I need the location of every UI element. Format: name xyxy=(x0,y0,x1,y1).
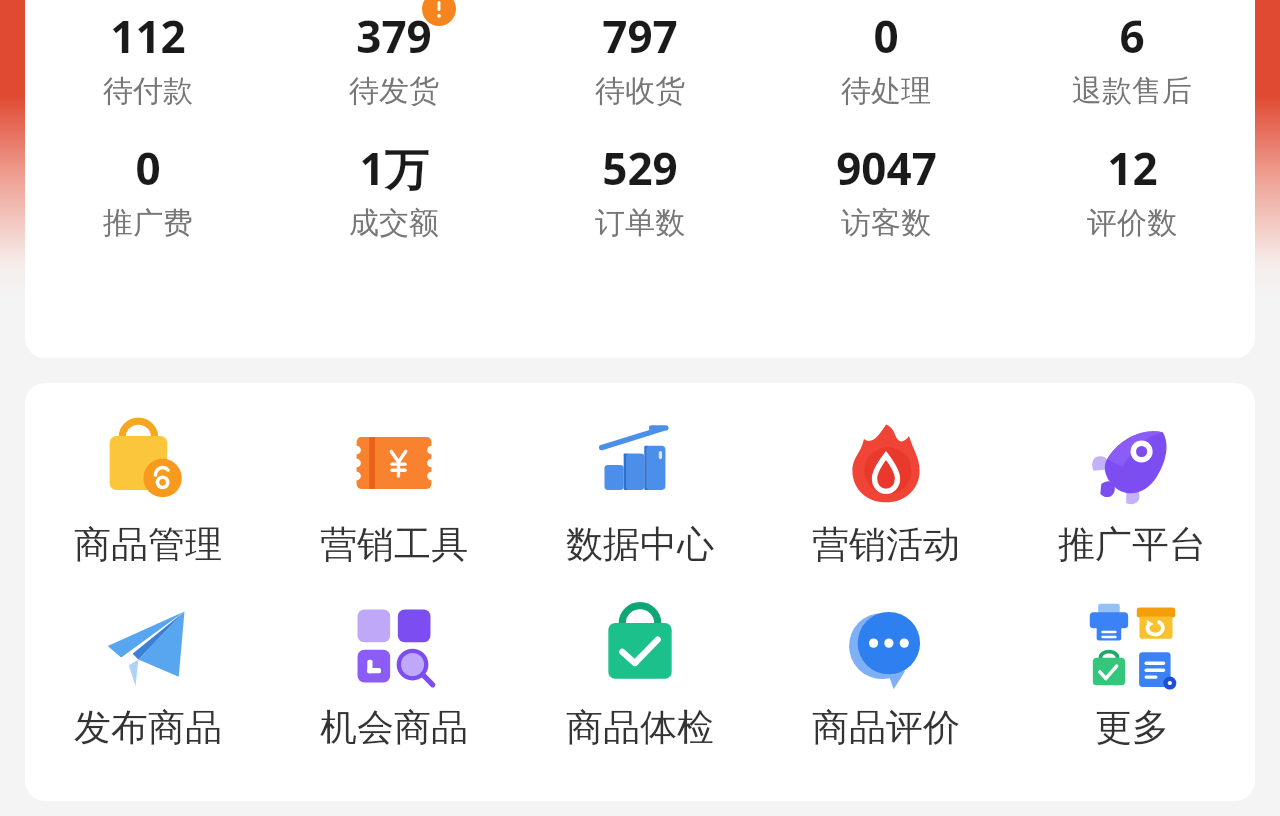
button[interactable]: 379 xyxy=(271,6,517,110)
staticText: 待处理 xyxy=(841,72,931,110)
staticText: 797 xyxy=(602,6,678,66)
button[interactable]: 营销工具 xyxy=(271,415,517,568)
staticText: 推广费 xyxy=(103,204,193,242)
staticText: 529 xyxy=(602,138,678,198)
staticText: 退款售后 xyxy=(1072,72,1192,110)
staticText: 成交额 xyxy=(349,204,439,242)
staticText: 订单数 xyxy=(595,204,685,242)
staticText: 推广平台 xyxy=(1058,521,1206,568)
button[interactable]: 529 xyxy=(517,138,763,242)
button[interactable]: 9047 xyxy=(763,138,1009,242)
button[interactable]: 0 xyxy=(763,6,1009,110)
staticText: 9047 xyxy=(836,138,937,198)
button[interactable]: 商品体检 xyxy=(517,598,763,751)
staticText: 待收货 xyxy=(595,72,685,110)
staticText: 数据中心 xyxy=(566,521,714,568)
button[interactable]: 12 xyxy=(1009,138,1255,242)
staticText: 营销工具 xyxy=(320,521,468,568)
button[interactable]: 0 xyxy=(25,138,271,242)
staticText: 1万 xyxy=(359,138,429,198)
staticText: 0 xyxy=(135,138,161,198)
button[interactable]: 推广平台 xyxy=(1009,415,1255,568)
staticText: 评价数 xyxy=(1087,204,1177,242)
staticText: 待发货 xyxy=(349,72,439,110)
staticText: 商品评价 xyxy=(812,704,960,751)
staticText: 112 xyxy=(110,6,186,66)
button[interactable]: 112 xyxy=(25,6,271,110)
button[interactable]: 发布商品 xyxy=(25,598,271,751)
staticText: 12 xyxy=(1107,138,1158,198)
staticText: 营销活动 xyxy=(812,521,960,568)
staticText: 待付款 xyxy=(103,72,193,110)
staticText: 更多 xyxy=(1095,704,1169,751)
button[interactable]: 6 xyxy=(1009,6,1255,110)
button[interactable]: 商品管理 xyxy=(25,415,271,568)
button[interactable]: 1万 xyxy=(271,138,517,242)
button[interactable]: 商品评价 xyxy=(763,598,1009,751)
button[interactable]: 营销活动 xyxy=(763,415,1009,568)
staticText: 访客数 xyxy=(841,204,931,242)
staticText: 商品管理 xyxy=(74,521,222,568)
staticText: 6 xyxy=(1119,6,1145,66)
button[interactable]: 更多 xyxy=(1009,598,1255,751)
staticText: 商品体检 xyxy=(566,704,714,751)
staticText: 379 xyxy=(356,6,432,66)
button[interactable]: 机会商品 xyxy=(271,598,517,751)
staticText: 0 xyxy=(873,6,899,66)
button[interactable]: 数据中心 xyxy=(517,415,763,568)
button[interactable]: 797 xyxy=(517,6,763,110)
staticText: 机会商品 xyxy=(320,704,468,751)
staticText: 发布商品 xyxy=(74,704,222,751)
